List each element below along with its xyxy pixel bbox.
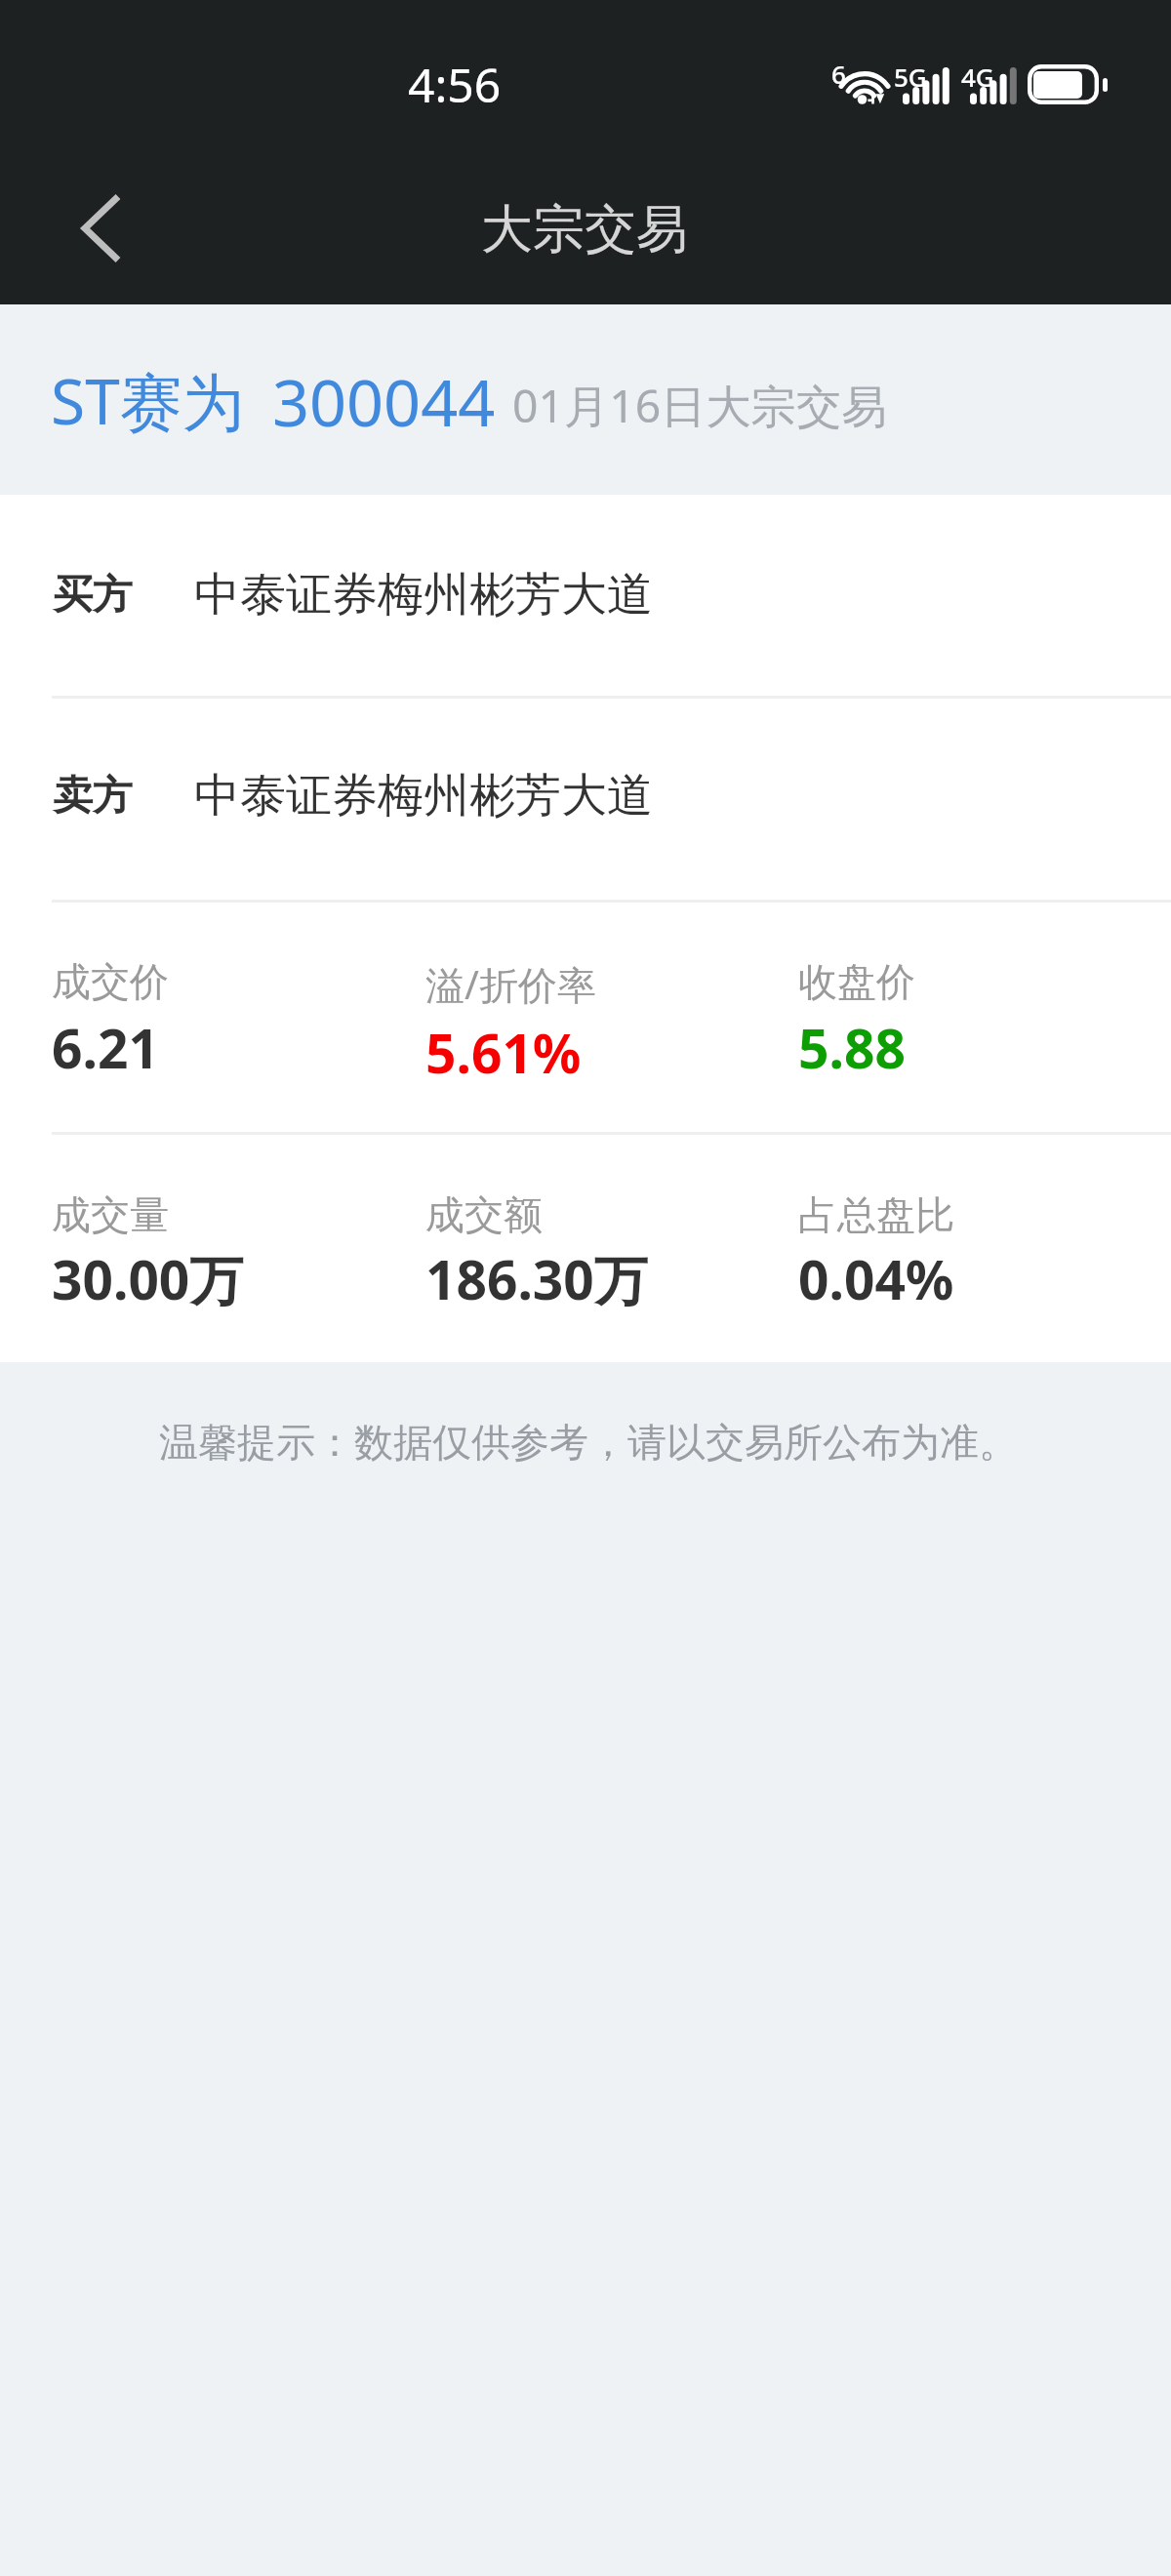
- staticText: 大宗交易: [481, 197, 688, 262]
- staticText: 成交额: [425, 1190, 543, 1239]
- staticText: 300044: [272, 357, 496, 446]
- staticText: 成交价: [52, 957, 169, 1006]
- staticText: 5.61%: [425, 1016, 582, 1089]
- staticText: 中泰证券梅州彬芳大道: [194, 566, 653, 624]
- staticText: 5.88: [798, 1011, 906, 1084]
- staticText: 01月16日大宗交易: [512, 375, 887, 436]
- staticText: 4G: [961, 60, 994, 94]
- staticText: 186.30万: [425, 1242, 648, 1315]
- staticText: 30.00万: [52, 1242, 244, 1315]
- staticText: 成交量: [52, 1190, 169, 1239]
- staticText: 卖方: [53, 771, 133, 822]
- staticText: ST赛为: [51, 358, 245, 443]
- staticText: 4:56: [408, 53, 502, 116]
- staticText: 0.04%: [798, 1242, 954, 1315]
- button[interactable]: 买方: [0, 495, 1171, 696]
- staticText: 溢/折价率: [425, 957, 596, 1011]
- staticText: 6: [831, 57, 846, 91]
- staticText: 收盘价: [798, 957, 915, 1006]
- button[interactable]: Back: [41, 183, 135, 273]
- staticText: 温馨提示：数据仅供参考，请以交易所公布为准。: [159, 1418, 1018, 1467]
- staticText: 中泰证券梅州彬芳大道: [194, 767, 653, 825]
- button[interactable]: 卖方: [0, 699, 1171, 900]
- staticText: 占总盘比: [798, 1190, 954, 1239]
- staticText: 6.21: [52, 1011, 159, 1084]
- staticText: 买方: [53, 570, 133, 621]
- staticText: 5G: [894, 60, 927, 94]
